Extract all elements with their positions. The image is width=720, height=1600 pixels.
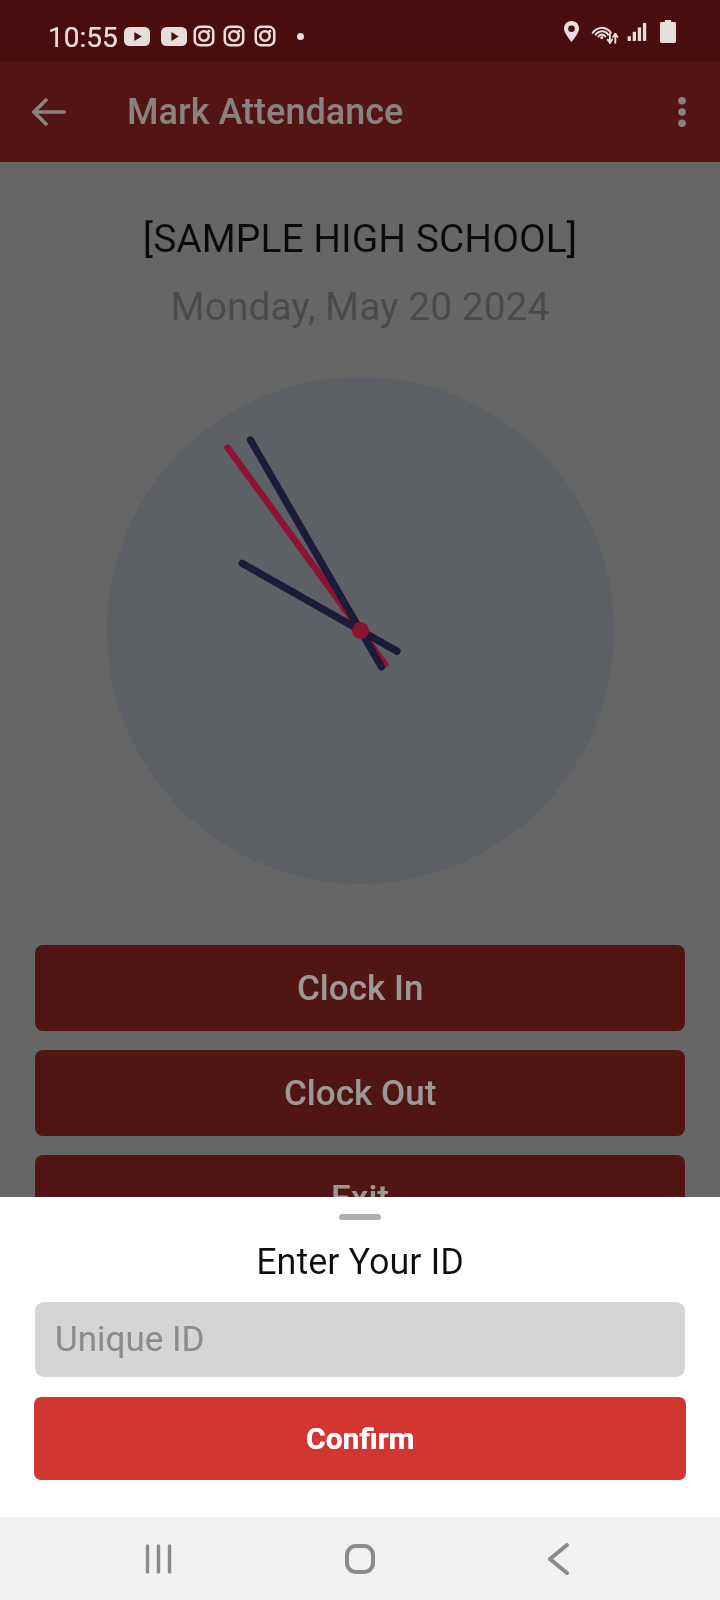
button[interactable]: Back: [518, 1519, 598, 1599]
button[interactable]: Exit: [35, 1155, 685, 1241]
button[interactable]: Clock In: [35, 945, 685, 1031]
button[interactable]: Back: [13, 76, 85, 148]
button[interactable]: Home: [320, 1519, 400, 1599]
staticText: [SAMPLE HIGH SCHOOL]: [0, 216, 720, 262]
staticText: Exit: [331, 1178, 390, 1219]
button[interactable]: Confirm: [34, 1397, 686, 1480]
button[interactable]: More options: [650, 80, 714, 144]
button[interactable]: Recent apps: [118, 1519, 198, 1599]
staticText: Clock Out: [284, 1073, 437, 1114]
button[interactable]: Unique ID: [35, 1302, 685, 1377]
button[interactable]: Clock Out: [35, 1050, 685, 1136]
staticText: Enter Your ID: [0, 1241, 720, 1283]
staticText: Mark Attendance: [127, 91, 404, 133]
staticText: Monday, May 20 2024: [0, 284, 720, 330]
staticText: Unique ID: [55, 1319, 205, 1360]
staticText: Clock In: [297, 968, 424, 1009]
staticText: 10:55: [48, 21, 118, 54]
staticText: Confirm: [306, 1421, 415, 1456]
